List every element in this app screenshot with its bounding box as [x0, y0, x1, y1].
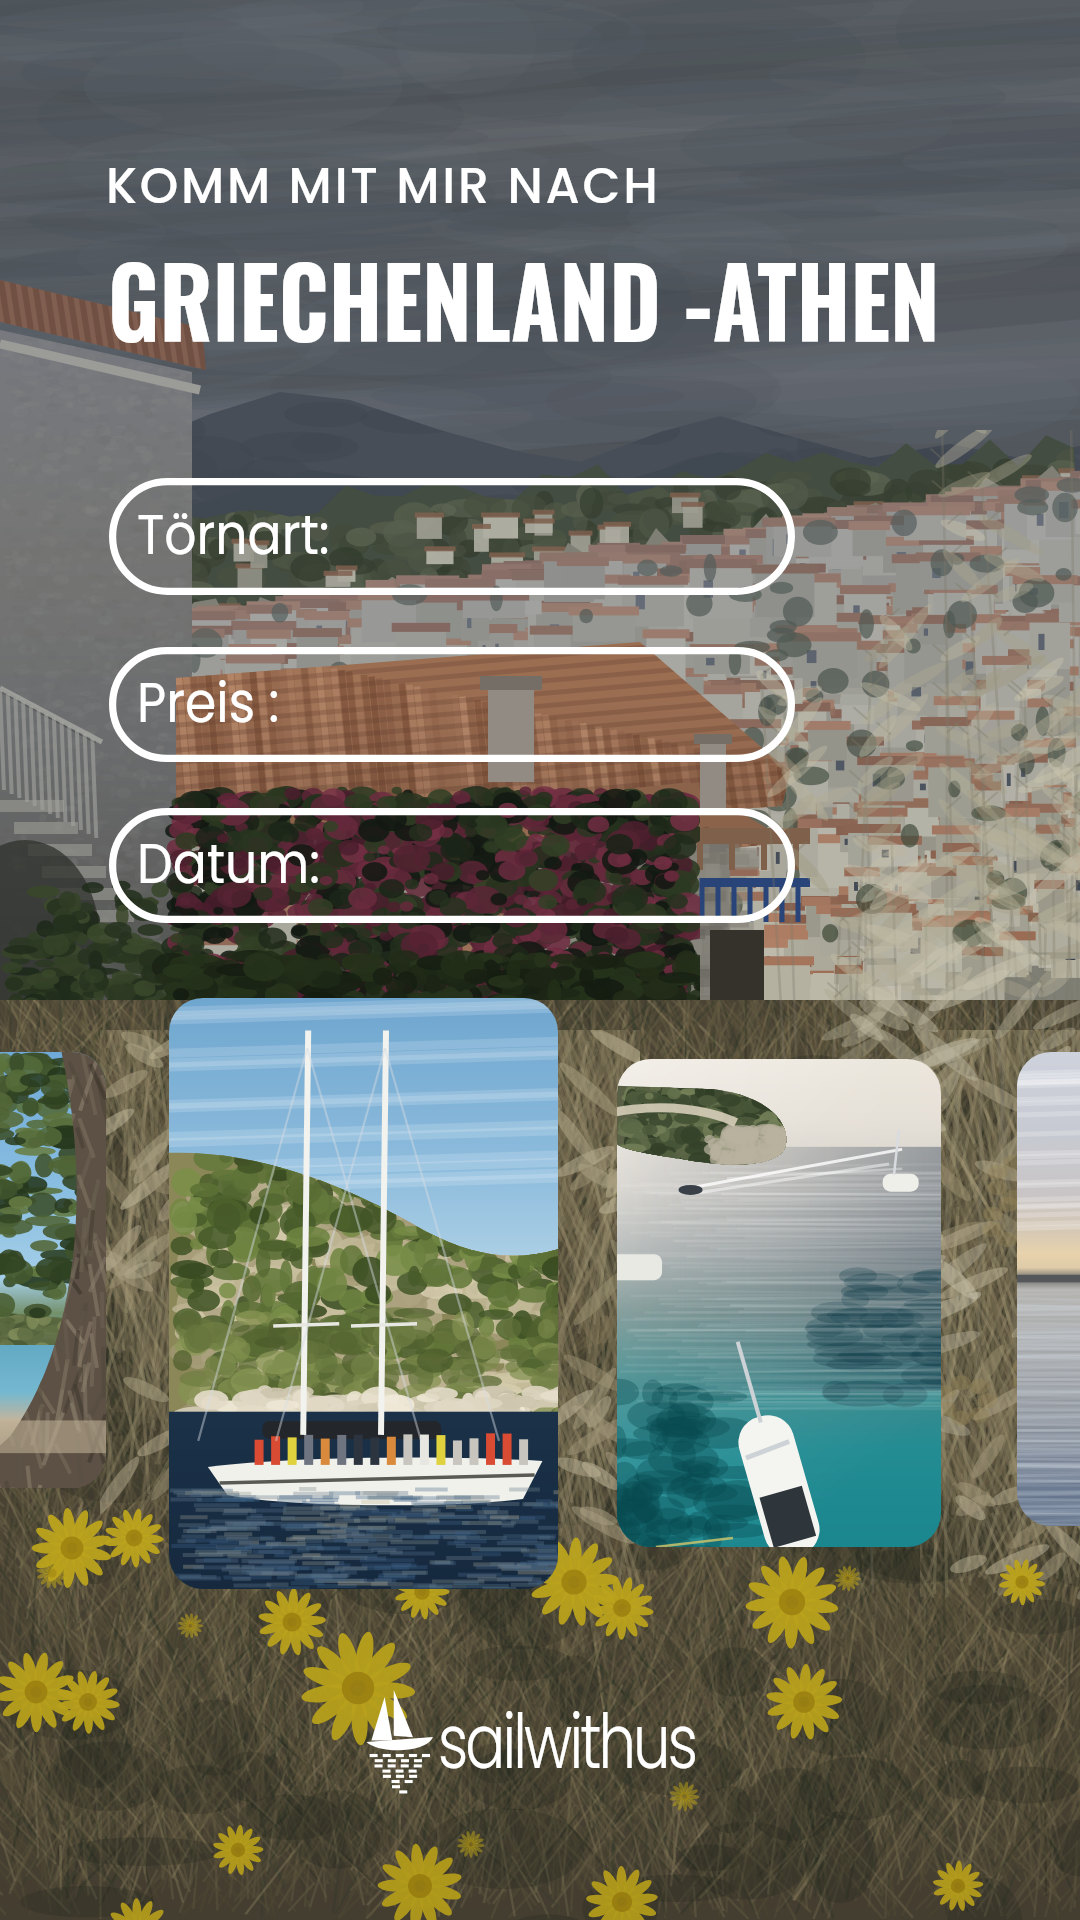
button[interactable]: Törnart:	[109, 478, 795, 595]
staticText: Datum:	[137, 824, 321, 902]
button[interactable]: Photo: beach with tree	[0, 1052, 106, 1488]
staticText: KOMM MIT MIR NACH	[106, 152, 661, 221]
button[interactable]: Photo: aerial view of a bay	[617, 1059, 941, 1547]
button[interactable]: Preis :	[109, 647, 795, 762]
button[interactable]: Photo: sunset over the sea	[1017, 1052, 1080, 1526]
button[interactable]: sailwithus logo	[364, 1690, 700, 1798]
staticText: Preis :	[137, 663, 279, 741]
button[interactable]: Datum:	[109, 808, 795, 923]
staticText: sailwithus	[438, 1689, 695, 1794]
staticText: Törnart:	[137, 495, 330, 573]
button[interactable]: Photo: sailing yachts at anchor	[169, 998, 558, 1589]
staticText: GRIECHENLAND -ATHEN	[108, 226, 940, 370]
